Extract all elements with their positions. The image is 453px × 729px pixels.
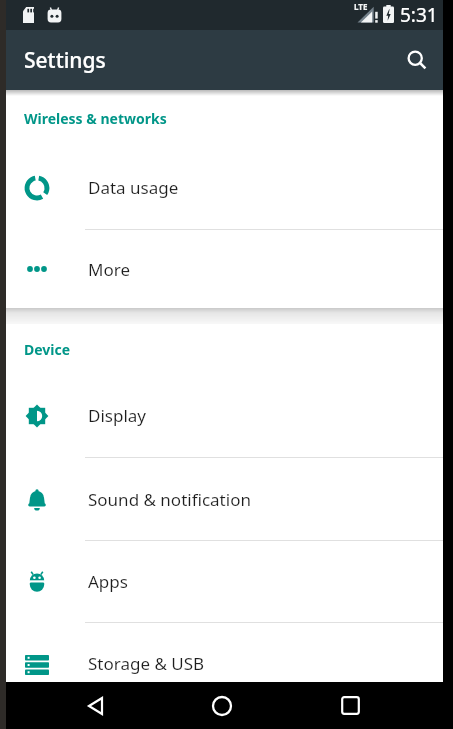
staticText: Storage & USB xyxy=(88,652,205,675)
staticText: 5:31 xyxy=(400,2,438,28)
button[interactable]: Display xyxy=(6,374,443,457)
button[interactable] xyxy=(190,682,254,729)
staticText: Display xyxy=(88,404,146,427)
staticText: Wireless & networks xyxy=(24,109,167,128)
staticText: LTE xyxy=(354,1,368,12)
button[interactable]: Data usage xyxy=(6,146,443,229)
staticText: Device xyxy=(24,340,71,359)
button[interactable]: Storage & USB xyxy=(6,623,443,682)
staticText: Settings xyxy=(24,46,106,75)
button[interactable] xyxy=(393,36,441,84)
staticText: More xyxy=(88,258,130,281)
staticText: Data usage xyxy=(88,176,179,199)
button[interactable] xyxy=(318,682,382,729)
staticText: Apps xyxy=(88,570,128,593)
button[interactable]: Apps xyxy=(6,541,443,622)
button[interactable] xyxy=(64,682,128,729)
button[interactable]: More xyxy=(6,230,443,308)
button[interactable]: Sound & notification xyxy=(6,458,443,540)
staticText: Sound & notification xyxy=(88,488,251,511)
